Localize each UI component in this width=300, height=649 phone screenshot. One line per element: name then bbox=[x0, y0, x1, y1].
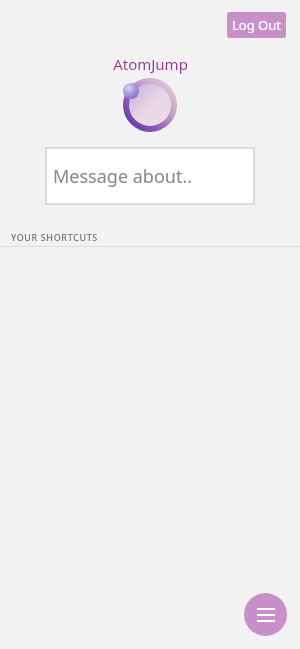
staticText: Message about.. bbox=[53, 164, 193, 189]
button[interactable]: Log Out bbox=[227, 12, 286, 38]
staticText: Log Out bbox=[232, 16, 281, 34]
staticText: YOUR SHORTCUTS bbox=[11, 231, 98, 243]
staticText: AtomJump bbox=[113, 54, 188, 74]
button[interactable]: Menu bbox=[244, 593, 287, 636]
button[interactable]: Message about.. bbox=[46, 148, 254, 204]
